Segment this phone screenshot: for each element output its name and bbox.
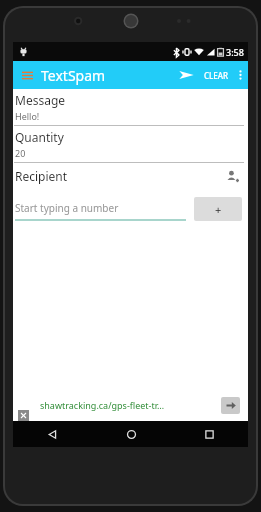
button[interactable]: Open navigation menu bbox=[13, 61, 41, 89]
staticText: Quantity bbox=[15, 129, 64, 145]
button[interactable]: Recent apps bbox=[170, 421, 248, 447]
staticText: CLEAR bbox=[204, 70, 229, 81]
button[interactable]: Go to advertiser bbox=[221, 397, 240, 414]
staticText: Recipient bbox=[15, 168, 68, 184]
staticText: Hello! bbox=[15, 110, 40, 122]
button[interactable]: Close ad bbox=[18, 410, 29, 421]
button[interactable]: CLEAR bbox=[201, 61, 232, 89]
button[interactable]: shawtracking.ca/gps-fleet-tr… bbox=[33, 391, 240, 419]
staticText: + bbox=[215, 202, 222, 217]
button[interactable]: Pick contact bbox=[222, 166, 242, 186]
staticText: shawtracking.ca/gps-fleet-tr… bbox=[40, 399, 165, 411]
staticText: TextSpam bbox=[41, 66, 106, 85]
button[interactable]: Send bbox=[171, 61, 201, 89]
button[interactable]: + bbox=[194, 197, 242, 221]
button[interactable]: More options bbox=[232, 61, 248, 89]
button[interactable]: Back bbox=[13, 421, 92, 447]
button[interactable]: Start typing a number bbox=[15, 201, 186, 221]
staticText: 20 bbox=[15, 147, 26, 159]
staticText: 3:58 bbox=[226, 46, 244, 58]
staticText: Start typing a number bbox=[15, 201, 119, 215]
staticText: Message bbox=[15, 92, 66, 108]
button[interactable]: Home bbox=[92, 421, 170, 447]
